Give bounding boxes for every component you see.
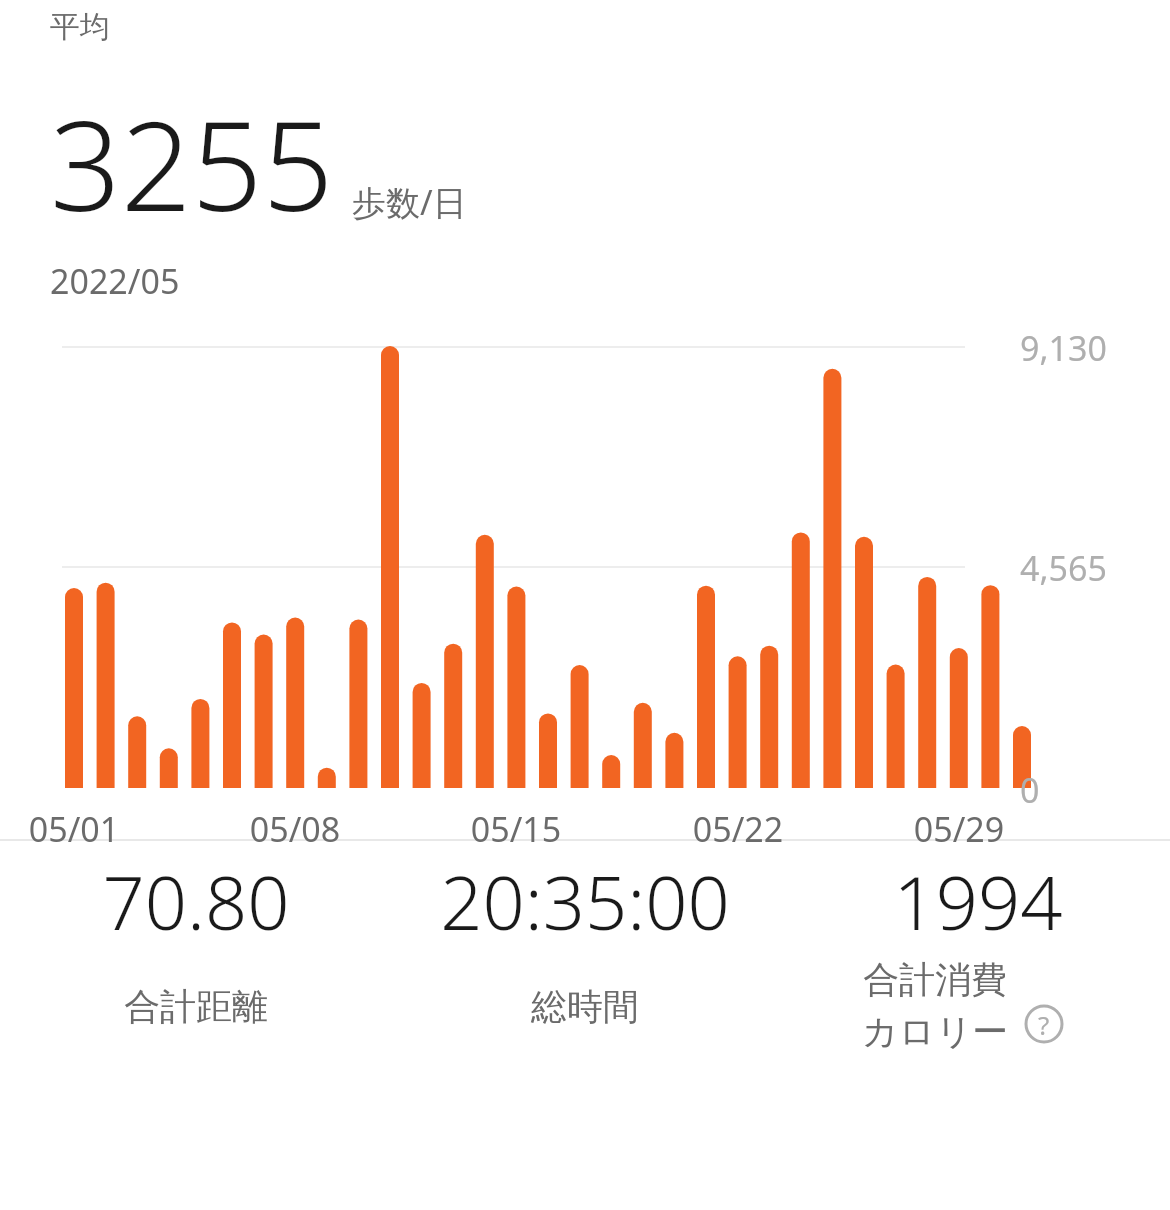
staticText: 歩数/日 [352, 179, 467, 225]
staticText: 05/22 [663, 806, 813, 852]
staticText: 2022/05 [50, 258, 180, 304]
button[interactable]: 20:35:00 [385, 851, 785, 1029]
button[interactable]: 70.80 [31, 851, 361, 1029]
staticText: ? [1038, 1007, 1050, 1042]
staticText: 平均 [50, 8, 110, 46]
staticText: 4,565 [1020, 545, 1107, 591]
staticText: 05/08 [220, 806, 370, 852]
staticText: 9,130 [1020, 325, 1107, 371]
staticText: 20:35:00 [385, 851, 785, 952]
staticText: 0 [1020, 767, 1040, 813]
staticText: 05/29 [884, 806, 1034, 852]
staticText: 合計消費 カロリー [785, 957, 1085, 1055]
button[interactable]: ヘルプ [1024, 1004, 1064, 1044]
staticText: 3255 [50, 78, 334, 247]
staticText: 05/01 [0, 806, 149, 852]
staticText: 05/15 [441, 806, 591, 852]
button[interactable]: 1994 [813, 851, 1143, 952]
staticText: 1994 [813, 851, 1143, 952]
staticText: 総時間 [385, 984, 785, 1029]
staticText: 70.80 [31, 851, 361, 952]
staticText: 合計距離 [31, 984, 361, 1029]
